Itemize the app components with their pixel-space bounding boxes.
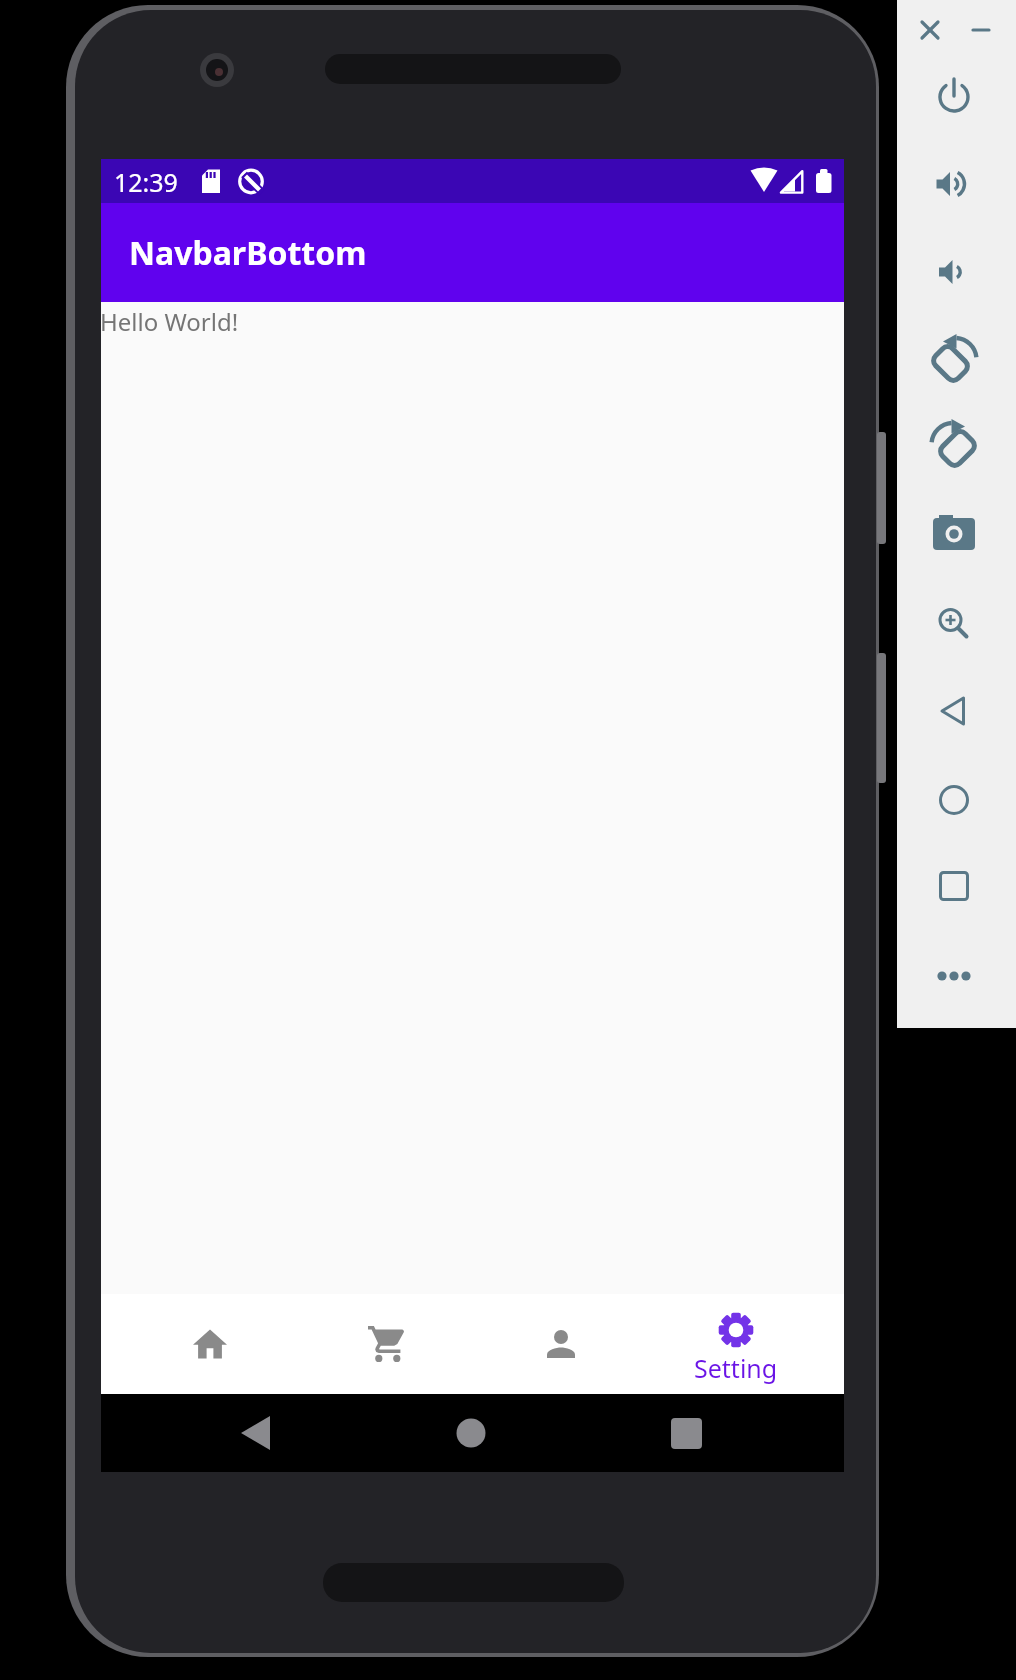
button[interactable] bbox=[473, 1294, 648, 1394]
staticText: 12:39 bbox=[114, 165, 178, 199]
button[interactable] bbox=[928, 69, 980, 121]
staticText: Hello World! bbox=[100, 305, 239, 338]
button[interactable] bbox=[201, 1394, 311, 1472]
button[interactable] bbox=[955, 4, 1007, 56]
button[interactable]: Setting bbox=[648, 1294, 823, 1394]
button[interactable] bbox=[928, 685, 980, 737]
button[interactable] bbox=[298, 1294, 473, 1394]
button[interactable] bbox=[122, 1294, 298, 1394]
button[interactable] bbox=[928, 774, 980, 826]
button[interactable] bbox=[928, 158, 980, 210]
button[interactable] bbox=[928, 860, 980, 912]
button[interactable] bbox=[928, 598, 980, 650]
button[interactable] bbox=[416, 1394, 526, 1472]
button[interactable] bbox=[928, 507, 980, 559]
button[interactable] bbox=[928, 246, 980, 298]
button[interactable] bbox=[631, 1394, 741, 1472]
button[interactable] bbox=[928, 332, 980, 384]
button[interactable] bbox=[928, 417, 980, 469]
button[interactable] bbox=[904, 4, 956, 56]
staticText: Setting bbox=[694, 1351, 778, 1385]
button[interactable] bbox=[928, 950, 980, 1002]
staticText: NavbarBottom bbox=[129, 231, 367, 275]
